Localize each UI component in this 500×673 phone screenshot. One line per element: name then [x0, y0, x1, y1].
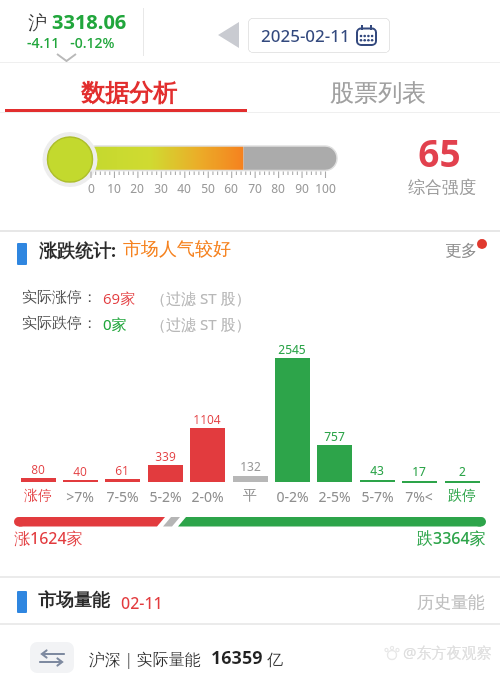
- staticText: 61: [115, 462, 129, 478]
- staticText: 0: [88, 180, 95, 196]
- staticText: 综合强度: [408, 177, 476, 198]
- button[interactable]: 更多: [437, 236, 492, 264]
- staticText: 0-2%: [276, 487, 309, 506]
- staticText: 涨跌统计:: [39, 238, 117, 263]
- staticText: 2: [459, 463, 466, 479]
- staticText: 实际跌停：: [22, 314, 97, 333]
- staticText: 3318.06: [52, 8, 127, 35]
- staticText: 跌3364家: [417, 527, 486, 549]
- staticText: 股票列表: [330, 78, 426, 108]
- staticText: 涨停: [24, 487, 52, 505]
- staticText: 7-5%: [106, 487, 139, 506]
- staticText: 更多: [445, 241, 477, 261]
- staticText: 平: [243, 487, 257, 505]
- staticText: 沪深｜实际量能: [89, 650, 201, 670]
- button[interactable]: 2025-02-11: [248, 18, 390, 53]
- button[interactable]: 沪深｜实际量能: [30, 642, 283, 673]
- staticText: 沪: [28, 9, 52, 35]
- staticText: 10: [107, 180, 121, 196]
- staticText: 02-11: [121, 592, 163, 614]
- staticText: 5-2%: [149, 487, 182, 506]
- staticText: 80: [31, 461, 45, 477]
- staticText: 40: [73, 463, 87, 479]
- staticText: 0家: [103, 314, 127, 334]
- staticText: （过滤 ST 股）: [151, 314, 251, 334]
- staticText: （过滤 ST 股）: [151, 288, 251, 308]
- button[interactable]: [250, 63, 500, 112]
- staticText: 1104: [193, 411, 221, 427]
- staticText: 2-5%: [318, 487, 351, 506]
- staticText: 132: [240, 458, 261, 474]
- button[interactable]: [0, 63, 250, 112]
- staticText: 5-7%: [361, 487, 394, 506]
- staticText: 7%<: [405, 487, 433, 506]
- staticText: 757: [324, 428, 345, 444]
- button[interactable]: 历史量能: [395, 588, 490, 616]
- staticText: 65: [418, 127, 461, 177]
- staticText: -4.11 -0.12%: [27, 33, 115, 52]
- staticText: 16359: [211, 645, 263, 670]
- staticText: 90: [295, 180, 309, 196]
- staticText: 339: [155, 448, 176, 464]
- staticText: 涨1624家: [14, 527, 83, 549]
- staticText: 跌停: [448, 487, 476, 505]
- staticText: 2025-02-11: [261, 24, 350, 47]
- staticText: @东方夜观察: [403, 642, 492, 662]
- staticText: 市场量能: [38, 589, 110, 612]
- staticText: 70: [248, 180, 262, 196]
- staticText: 数据分析: [81, 78, 177, 108]
- staticText: 100: [315, 180, 336, 196]
- staticText: 17: [412, 463, 426, 479]
- staticText: 亿: [267, 650, 283, 670]
- staticText: 60: [224, 180, 238, 196]
- staticText: 2-0%: [191, 487, 224, 506]
- staticText: 历史量能: [417, 592, 485, 613]
- staticText: 30: [154, 180, 168, 196]
- staticText: 69家: [103, 288, 136, 308]
- staticText: 2545: [278, 341, 306, 357]
- staticText: 43: [370, 462, 384, 478]
- staticText: 40: [177, 180, 191, 196]
- staticText: >7%: [66, 487, 94, 506]
- staticText: 80: [271, 180, 285, 196]
- staticText: 市场人气较好: [123, 238, 231, 261]
- staticText: 50: [201, 180, 215, 196]
- staticText: 20: [130, 180, 144, 196]
- staticText: 实际涨停：: [22, 288, 97, 307]
